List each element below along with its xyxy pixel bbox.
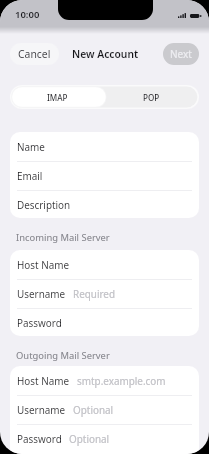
staticText: Outgoing Mail Server	[16, 349, 110, 362]
button[interactable]: Host Name	[10, 250, 199, 279]
staticText: Incoming Mail Server	[16, 231, 110, 244]
button[interactable]: Cancel	[10, 43, 59, 65]
staticText: Host Name	[17, 258, 70, 271]
staticText: Email	[17, 169, 43, 182]
button[interactable]: Password	[10, 308, 199, 336]
staticText: Optional	[69, 432, 110, 445]
staticText: Name	[17, 140, 45, 153]
button[interactable]: IMAP	[10, 85, 104, 109]
staticText: POP	[143, 92, 160, 103]
staticText: smtp.example.com	[77, 374, 166, 387]
staticText: Cancel	[18, 47, 51, 61]
staticText: Username	[17, 403, 66, 416]
staticText: Host Name	[17, 374, 70, 387]
button[interactable]: Host Name	[10, 366, 199, 395]
button[interactable]: Description	[10, 190, 199, 218]
button[interactable]: Password	[10, 424, 199, 453]
button[interactable]: Username	[10, 279, 199, 308]
button[interactable]: Next	[163, 43, 199, 65]
staticText: Required	[73, 287, 116, 300]
staticText: IMAP	[47, 92, 68, 103]
staticText: 10:00	[15, 8, 40, 21]
staticText: Password	[17, 432, 62, 445]
button[interactable]: Name	[10, 132, 199, 161]
staticText: Username	[17, 287, 66, 300]
button[interactable]: Username	[10, 395, 199, 424]
staticText: Password	[17, 316, 62, 329]
button[interactable]: Email	[10, 161, 199, 190]
staticText: Optional	[73, 403, 114, 416]
staticText: Next	[170, 47, 192, 61]
staticText: New Account	[72, 47, 139, 61]
staticText: Description	[17, 198, 71, 211]
button[interactable]: POP	[104, 85, 199, 109]
